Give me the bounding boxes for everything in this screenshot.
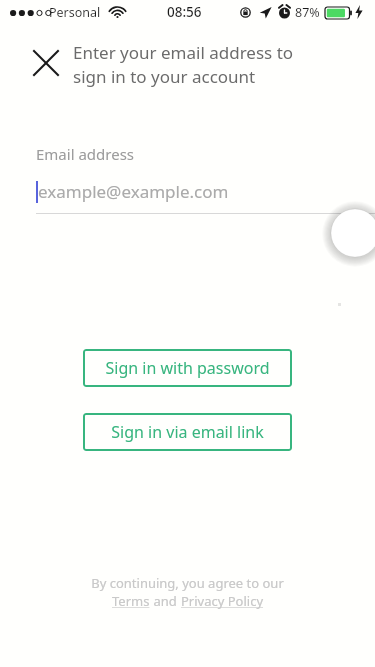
staticText: 08:56 xyxy=(167,3,202,21)
staticText: By continuing, you agree to our xyxy=(91,574,284,592)
button[interactable]: Terms xyxy=(112,592,150,610)
staticText: Sign in via email link xyxy=(111,421,264,443)
staticText: Sign in with password xyxy=(105,357,270,379)
staticText: Terms xyxy=(112,592,150,610)
button[interactable]: Sign in via email link xyxy=(83,413,292,451)
staticText: Privacy Policy xyxy=(181,592,264,610)
staticText: Enter your email address to sign in to y… xyxy=(73,41,325,88)
button[interactable]: Privacy Policy xyxy=(181,592,264,610)
staticText: 87% xyxy=(295,4,320,21)
staticText: and xyxy=(150,592,181,610)
staticText: Personal xyxy=(49,4,101,21)
staticText: example@example.com xyxy=(38,180,229,203)
button[interactable]: example@example.com xyxy=(36,180,336,213)
button[interactable]: Close xyxy=(23,40,68,85)
staticText: Email address xyxy=(36,144,135,164)
button[interactable]: Sign in with password xyxy=(83,349,292,387)
